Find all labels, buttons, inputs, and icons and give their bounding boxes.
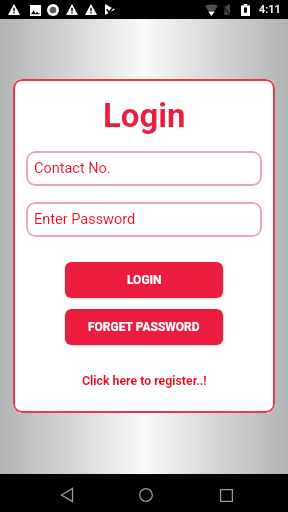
staticText: Contact No. [34,160,111,177]
staticText: Login [103,96,186,135]
button[interactable]: Home [126,476,166,512]
staticText: Enter Password [34,211,136,228]
button[interactable]: Back [47,476,87,512]
staticText: Click here to register..! [82,374,207,388]
button[interactable]: FORGET PASSWORD [65,309,223,345]
button[interactable]: Enter Password [26,202,262,237]
staticText: 4:11 [259,3,281,16]
button[interactable]: Click here to register..! [82,374,207,388]
button[interactable]: LOGIN [65,262,223,298]
button[interactable]: Recent apps [206,476,246,512]
staticText: FORGET PASSWORD [88,320,200,334]
button[interactable]: Contact No. [26,151,262,186]
staticText: LOGIN [127,273,162,287]
